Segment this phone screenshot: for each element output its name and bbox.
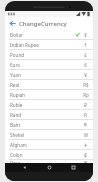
button[interactable]: Shekel bbox=[5, 130, 93, 140]
staticText: Baht bbox=[10, 122, 82, 128]
staticText: Dollar bbox=[10, 32, 75, 38]
staticText: ¥ bbox=[84, 72, 87, 78]
button[interactable]: Peso bbox=[5, 160, 93, 163]
button[interactable]: Recent apps bbox=[69, 163, 78, 172]
staticText: ₽ bbox=[84, 102, 87, 108]
staticText: Yuan bbox=[10, 72, 82, 78]
staticText: R bbox=[84, 112, 87, 118]
staticText: ฿ bbox=[84, 122, 87, 127]
staticText: Pound bbox=[10, 52, 82, 58]
staticText: Euro bbox=[10, 62, 82, 68]
button[interactable]: Colon bbox=[5, 150, 93, 160]
button[interactable]: Euro bbox=[5, 60, 93, 70]
staticText: Indian Rupee bbox=[10, 42, 82, 48]
staticText: R$ bbox=[83, 82, 89, 88]
button[interactable]: Ruble bbox=[5, 100, 93, 110]
staticText: Ruble bbox=[10, 102, 82, 108]
button[interactable]: Back bbox=[5, 17, 19, 30]
staticText: Rupiah bbox=[10, 92, 82, 98]
button[interactable]: Baht bbox=[5, 120, 93, 130]
button[interactable]: Yuan bbox=[5, 70, 93, 80]
staticText: ₪ bbox=[84, 132, 88, 138]
staticText: Peso bbox=[10, 160, 82, 163]
staticText: ؋ bbox=[84, 142, 87, 147]
staticText: Rand bbox=[10, 112, 82, 118]
button[interactable]: Rupiah bbox=[5, 90, 93, 100]
staticText: ₱ bbox=[84, 160, 87, 163]
staticText: Real bbox=[10, 82, 82, 88]
staticText: Colon bbox=[10, 152, 82, 158]
button[interactable]: Rand bbox=[5, 110, 93, 120]
button[interactable]: Dollar bbox=[5, 30, 93, 40]
staticText: Afghani bbox=[10, 142, 82, 148]
button[interactable]: Pound bbox=[5, 50, 93, 60]
button[interactable]: Home bbox=[45, 163, 54, 172]
staticText: € bbox=[84, 62, 87, 68]
staticText: $ bbox=[84, 32, 87, 38]
button[interactable]: Afghani bbox=[5, 140, 93, 150]
staticText: Shekel bbox=[10, 132, 82, 138]
staticText: £ bbox=[84, 52, 87, 58]
button[interactable]: Back bbox=[20, 163, 29, 172]
staticText: ChangeCurrency bbox=[19, 20, 67, 28]
button[interactable]: Real bbox=[5, 80, 93, 90]
staticText: Rp bbox=[83, 92, 89, 98]
staticText: ₹ bbox=[84, 42, 87, 48]
staticText: ₡ bbox=[84, 152, 87, 158]
button[interactable]: Indian Rupee bbox=[5, 40, 93, 50]
